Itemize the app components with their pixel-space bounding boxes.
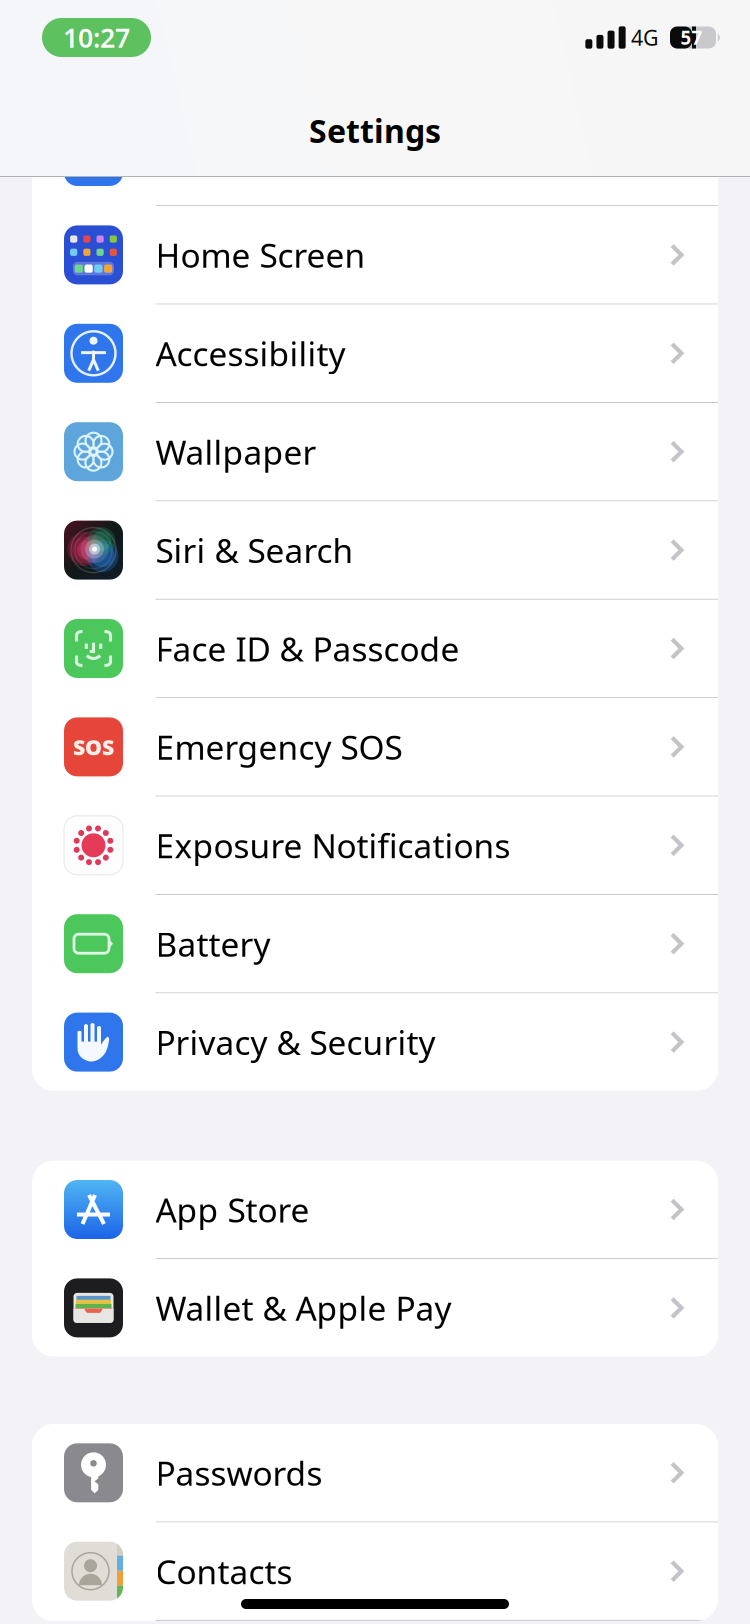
staticText: Wallpaper [155,430,316,474]
staticText: Settings [309,109,441,152]
button[interactable]: Wallet & Apple Pay [32,1259,718,1357]
button[interactable]: SOS [32,698,718,797]
button[interactable]: App Store [32,1161,718,1259]
staticText: Exposure Notifications [155,823,510,867]
button[interactable]: Siri & Search [32,501,718,600]
staticText: 57 [680,25,702,50]
button[interactable]: Battery [32,895,718,993]
staticText: Face ID & Passcode [155,626,459,671]
staticText: 10:27 [63,20,130,55]
staticText: Home Screen [155,233,365,277]
staticText: SOS [73,733,114,761]
button[interactable]: Accessibility [32,305,718,403]
staticText: Contacts [155,1549,292,1593]
staticText: 4G [631,23,659,52]
staticText: Accessibility [155,331,345,375]
staticText: Privacy & Security [155,1020,435,1064]
button[interactable]: Exposure Notifications [32,797,718,895]
button[interactable]: Wallpaper [32,403,718,501]
staticText: Battery [155,922,270,966]
staticText: Siri & Search [155,528,353,572]
staticText: Emergency SOS [155,725,402,769]
staticText: Wallet & Apple Pay [155,1286,451,1330]
button[interactable]: Contacts [32,1522,718,1621]
button[interactable]: Passwords [32,1424,718,1522]
staticText: App Store [155,1187,309,1232]
staticText: Passwords [155,1451,322,1495]
button[interactable]: AA [32,108,718,206]
staticText: Display & Brightness [155,134,483,179]
button[interactable]: Face ID & Passcode [32,600,718,698]
button[interactable]: Privacy & Security [32,993,718,1091]
button[interactable]: Home Screen [32,206,718,305]
